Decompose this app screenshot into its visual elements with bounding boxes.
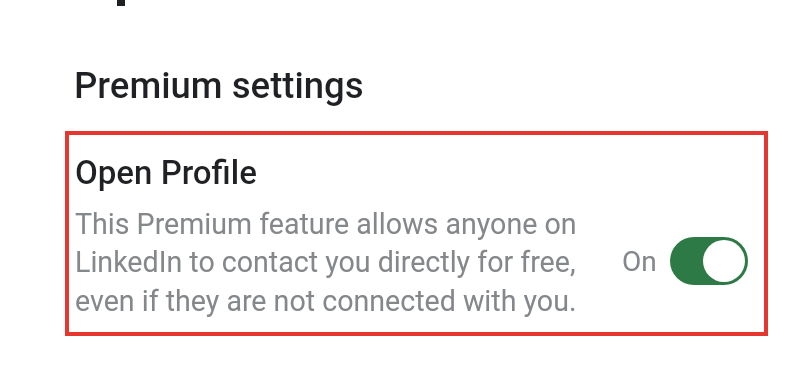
staticText: This Premium feature allows anyone on Li… <box>75 207 577 318</box>
button[interactable]: Open Profile <box>65 131 768 336</box>
staticText: On <box>622 245 657 278</box>
staticText: Premium settings <box>74 64 364 107</box>
button[interactable]: Open Profile switch, On <box>670 237 748 285</box>
staticText: Open Profile <box>75 153 257 192</box>
